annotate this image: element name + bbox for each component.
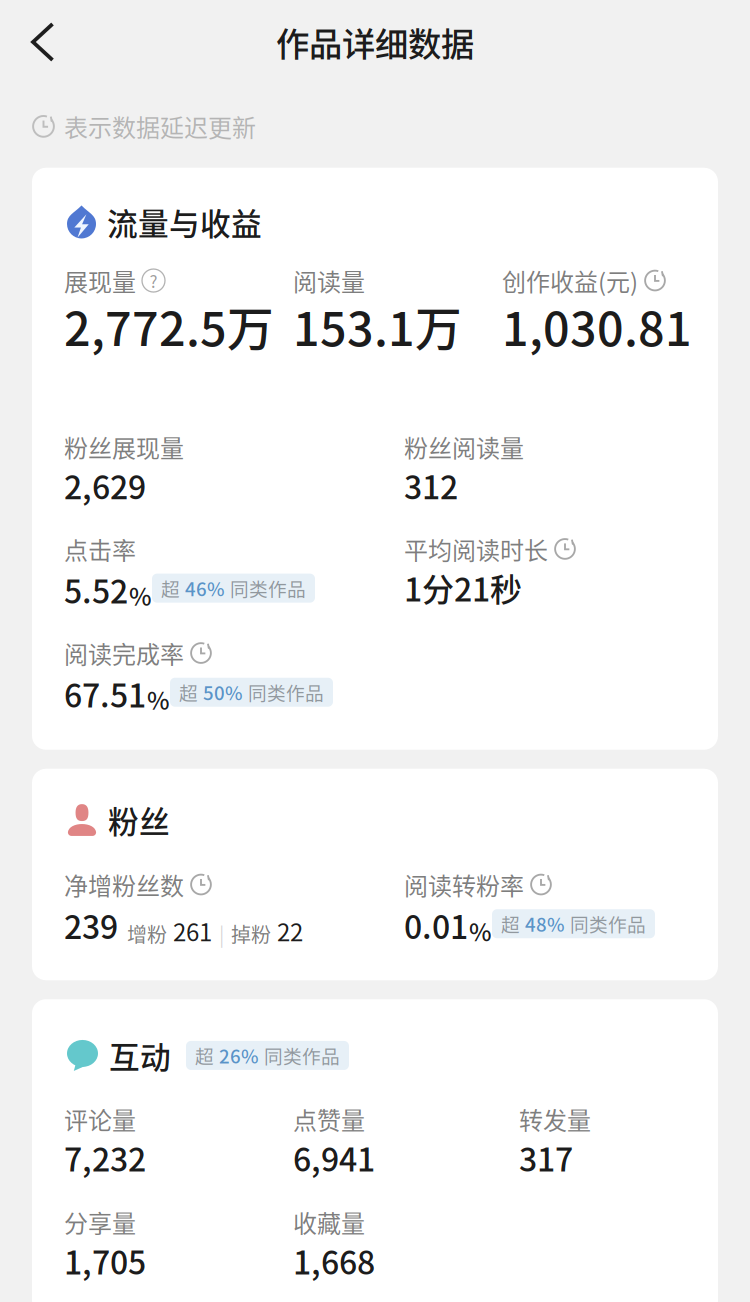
staticText: | — [219, 919, 224, 948]
staticText: 转发量 — [519, 1102, 591, 1136]
staticText: 表示数据延迟更新 — [64, 109, 256, 144]
staticText: 超 — [195, 1042, 214, 1069]
staticText: 增粉 — [127, 919, 167, 948]
staticText: 0.01 — [404, 902, 468, 948]
staticText: 1,030.81 — [502, 292, 692, 359]
staticText: 48% — [525, 910, 565, 937]
staticText: 净增粉丝数 — [64, 867, 184, 902]
staticText: 同类作品 — [264, 1042, 340, 1069]
staticText: 点击率 — [64, 532, 136, 566]
staticText: % — [469, 913, 492, 948]
staticText: 粉丝 — [108, 798, 170, 842]
staticText: 作品详细数据 — [276, 18, 474, 66]
staticText: 收藏量 — [293, 1205, 365, 1239]
staticText: 5.52 — [64, 566, 128, 613]
staticText: 2,772.5万 — [64, 292, 274, 359]
staticText: 22 — [277, 913, 303, 948]
staticText: 同类作品 — [230, 575, 306, 602]
staticText: 1,705 — [64, 1237, 146, 1284]
staticText: 同类作品 — [570, 910, 646, 937]
staticText: 超 — [179, 679, 198, 706]
staticText: 超 — [501, 910, 520, 937]
staticText: 26% — [219, 1042, 259, 1069]
staticText: 互动 — [109, 1033, 171, 1078]
staticText: 2,629 — [64, 462, 146, 508]
staticText: 261 — [173, 913, 212, 948]
staticText: 7,232 — [64, 1134, 146, 1181]
staticText: 50% — [203, 679, 243, 706]
staticText: 平均阅读时长 — [404, 532, 548, 566]
staticText: 展现量 — [64, 263, 136, 298]
staticText: 67.51 — [64, 670, 146, 717]
staticText: 阅读完成率 — [64, 636, 184, 670]
staticText: 阅读量 — [293, 263, 365, 298]
staticText: % — [129, 578, 152, 613]
staticText: 317 — [519, 1134, 573, 1181]
staticText: 1分21秒 — [404, 564, 522, 611]
staticText: 超 — [161, 575, 180, 602]
staticText: 239 — [64, 902, 118, 948]
staticText: 6,941 — [293, 1134, 375, 1181]
staticText: 流量与收益 — [107, 200, 262, 244]
staticText: 同类作品 — [248, 679, 324, 706]
staticText: 46% — [185, 575, 225, 602]
staticText: 评论量 — [64, 1102, 136, 1136]
staticText: 1,668 — [293, 1237, 375, 1284]
staticText: 阅读转粉率 — [404, 867, 524, 902]
staticText: 掉粉 — [231, 919, 271, 948]
staticText: 分享量 — [64, 1205, 136, 1239]
staticText: 点赞量 — [293, 1102, 365, 1136]
button[interactable]: Back — [0, 10, 75, 74]
staticText: ? — [149, 268, 157, 293]
staticText: 312 — [404, 462, 458, 508]
staticText: 粉丝阅读量 — [404, 429, 524, 464]
staticText: % — [147, 682, 170, 717]
staticText: 创作收益(元) — [502, 263, 638, 298]
staticText: 粉丝展现量 — [64, 429, 184, 464]
staticText: 153.1万 — [293, 292, 462, 359]
